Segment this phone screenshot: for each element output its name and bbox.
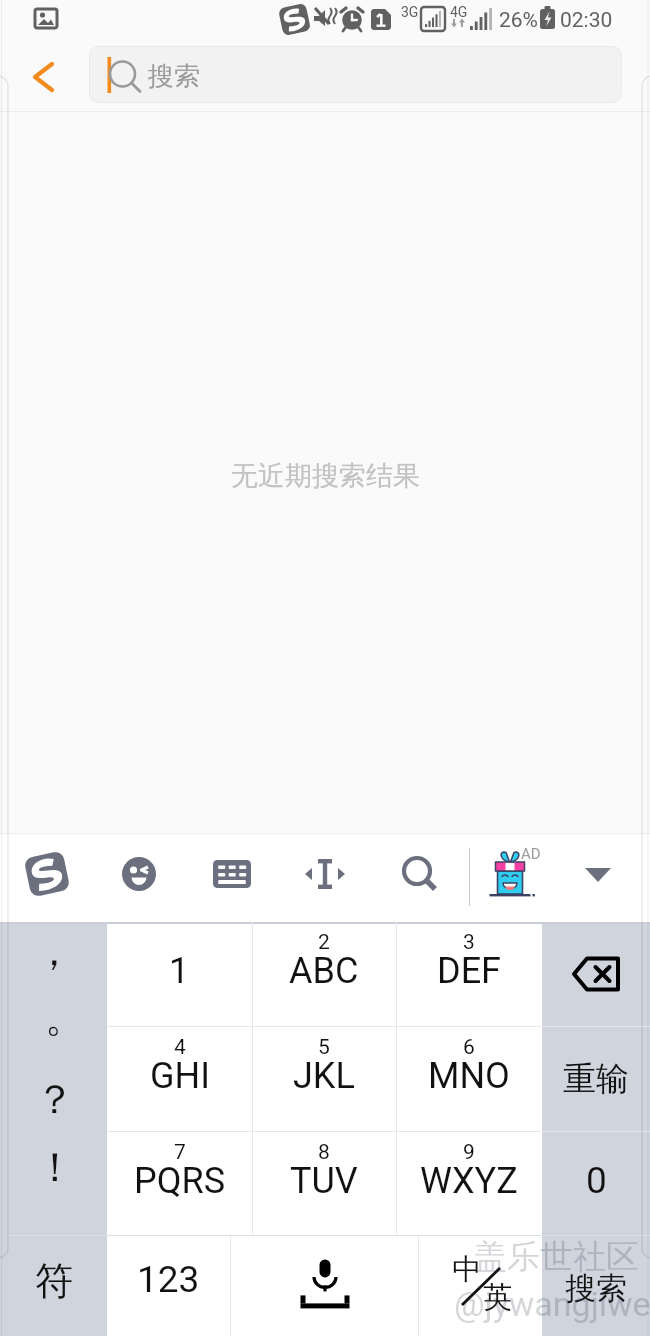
button[interactable]: 4 xyxy=(107,1026,252,1131)
button[interactable]: 。 xyxy=(0,988,107,1054)
button[interactable]: ？ xyxy=(0,1054,107,1121)
button[interactable]: Chinese English switch xyxy=(419,1236,542,1336)
button[interactable]: Emoji xyxy=(95,830,183,918)
staticText: 123 xyxy=(137,1258,200,1301)
button[interactable]: ！ xyxy=(0,1121,107,1188)
staticText: 中 xyxy=(452,1251,481,1288)
button[interactable]: Search xyxy=(376,830,464,918)
button[interactable]: Sogou input xyxy=(3,830,91,918)
staticText: ？ xyxy=(35,1074,75,1122)
staticText: 7 xyxy=(174,1140,186,1165)
staticText: 英 xyxy=(483,1279,512,1316)
staticText: 4G xyxy=(450,4,468,20)
button[interactable]: Space xyxy=(231,1236,418,1336)
staticText: 26% xyxy=(499,8,538,33)
staticText: 02:30 xyxy=(560,8,613,33)
button[interactable]: 符 xyxy=(0,1236,107,1336)
button[interactable]: Back xyxy=(0,38,88,112)
button[interactable]: 搜索 xyxy=(542,1236,650,1336)
button[interactable]: Move cursor xyxy=(281,830,369,918)
button[interactable]: 5 xyxy=(252,1026,396,1131)
button[interactable]: Gift ad xyxy=(467,830,555,918)
staticText: WXYZ xyxy=(420,1160,518,1202)
button[interactable]: 0 xyxy=(542,1131,650,1236)
button[interactable]: 123 xyxy=(107,1236,230,1336)
staticText: PQRS xyxy=(134,1160,226,1202)
staticText: 符 xyxy=(35,1257,73,1305)
button[interactable]: 3 xyxy=(396,922,542,1026)
button[interactable]: 8 xyxy=(252,1131,396,1236)
staticText: 2 xyxy=(318,930,330,955)
staticText: 4 xyxy=(174,1035,186,1060)
staticText: 9 xyxy=(463,1140,475,1165)
button[interactable]: ， xyxy=(0,922,107,988)
staticText: 6 xyxy=(463,1035,475,1060)
staticText: @jywangjiwei xyxy=(454,1284,650,1324)
staticText: 。 xyxy=(45,992,85,1040)
button[interactable]: Keyboard layout xyxy=(188,830,276,918)
button[interactable]: 9 xyxy=(396,1131,542,1236)
staticText: 3G xyxy=(401,4,419,20)
staticText: TUV xyxy=(290,1160,358,1202)
staticText: DEF xyxy=(437,950,501,992)
staticText: ， xyxy=(34,926,74,974)
staticText: 0 xyxy=(586,1159,607,1202)
staticText: MNO xyxy=(428,1055,510,1097)
staticText: JKL xyxy=(293,1055,355,1097)
staticText: 1 xyxy=(169,950,190,992)
staticText: GHI xyxy=(150,1055,210,1097)
button[interactable]: 1 xyxy=(107,922,252,1026)
staticText: 无近期搜索结果 xyxy=(231,459,420,493)
button[interactable]: 重输 xyxy=(542,1026,650,1131)
staticText: AD xyxy=(521,845,541,863)
staticText: 搜索 xyxy=(565,1269,627,1308)
staticText: 盖乐世社区 xyxy=(474,1236,639,1278)
button[interactable]: 2 xyxy=(252,922,396,1026)
staticText: 3 xyxy=(463,930,475,955)
staticText: ABC xyxy=(289,950,359,992)
button[interactable]: 6 xyxy=(396,1026,542,1131)
staticText: 8 xyxy=(318,1140,330,1165)
button[interactable]: 7 xyxy=(107,1131,252,1236)
button[interactable]: Backspace xyxy=(542,922,650,1026)
staticText: 搜索 xyxy=(148,60,200,93)
button[interactable]: Hide keyboard xyxy=(554,830,642,918)
button[interactable]: 搜索 xyxy=(89,46,622,103)
staticText: 重输 xyxy=(563,1058,629,1100)
staticText: 5 xyxy=(318,1035,330,1060)
staticText: ！ xyxy=(35,1142,75,1190)
